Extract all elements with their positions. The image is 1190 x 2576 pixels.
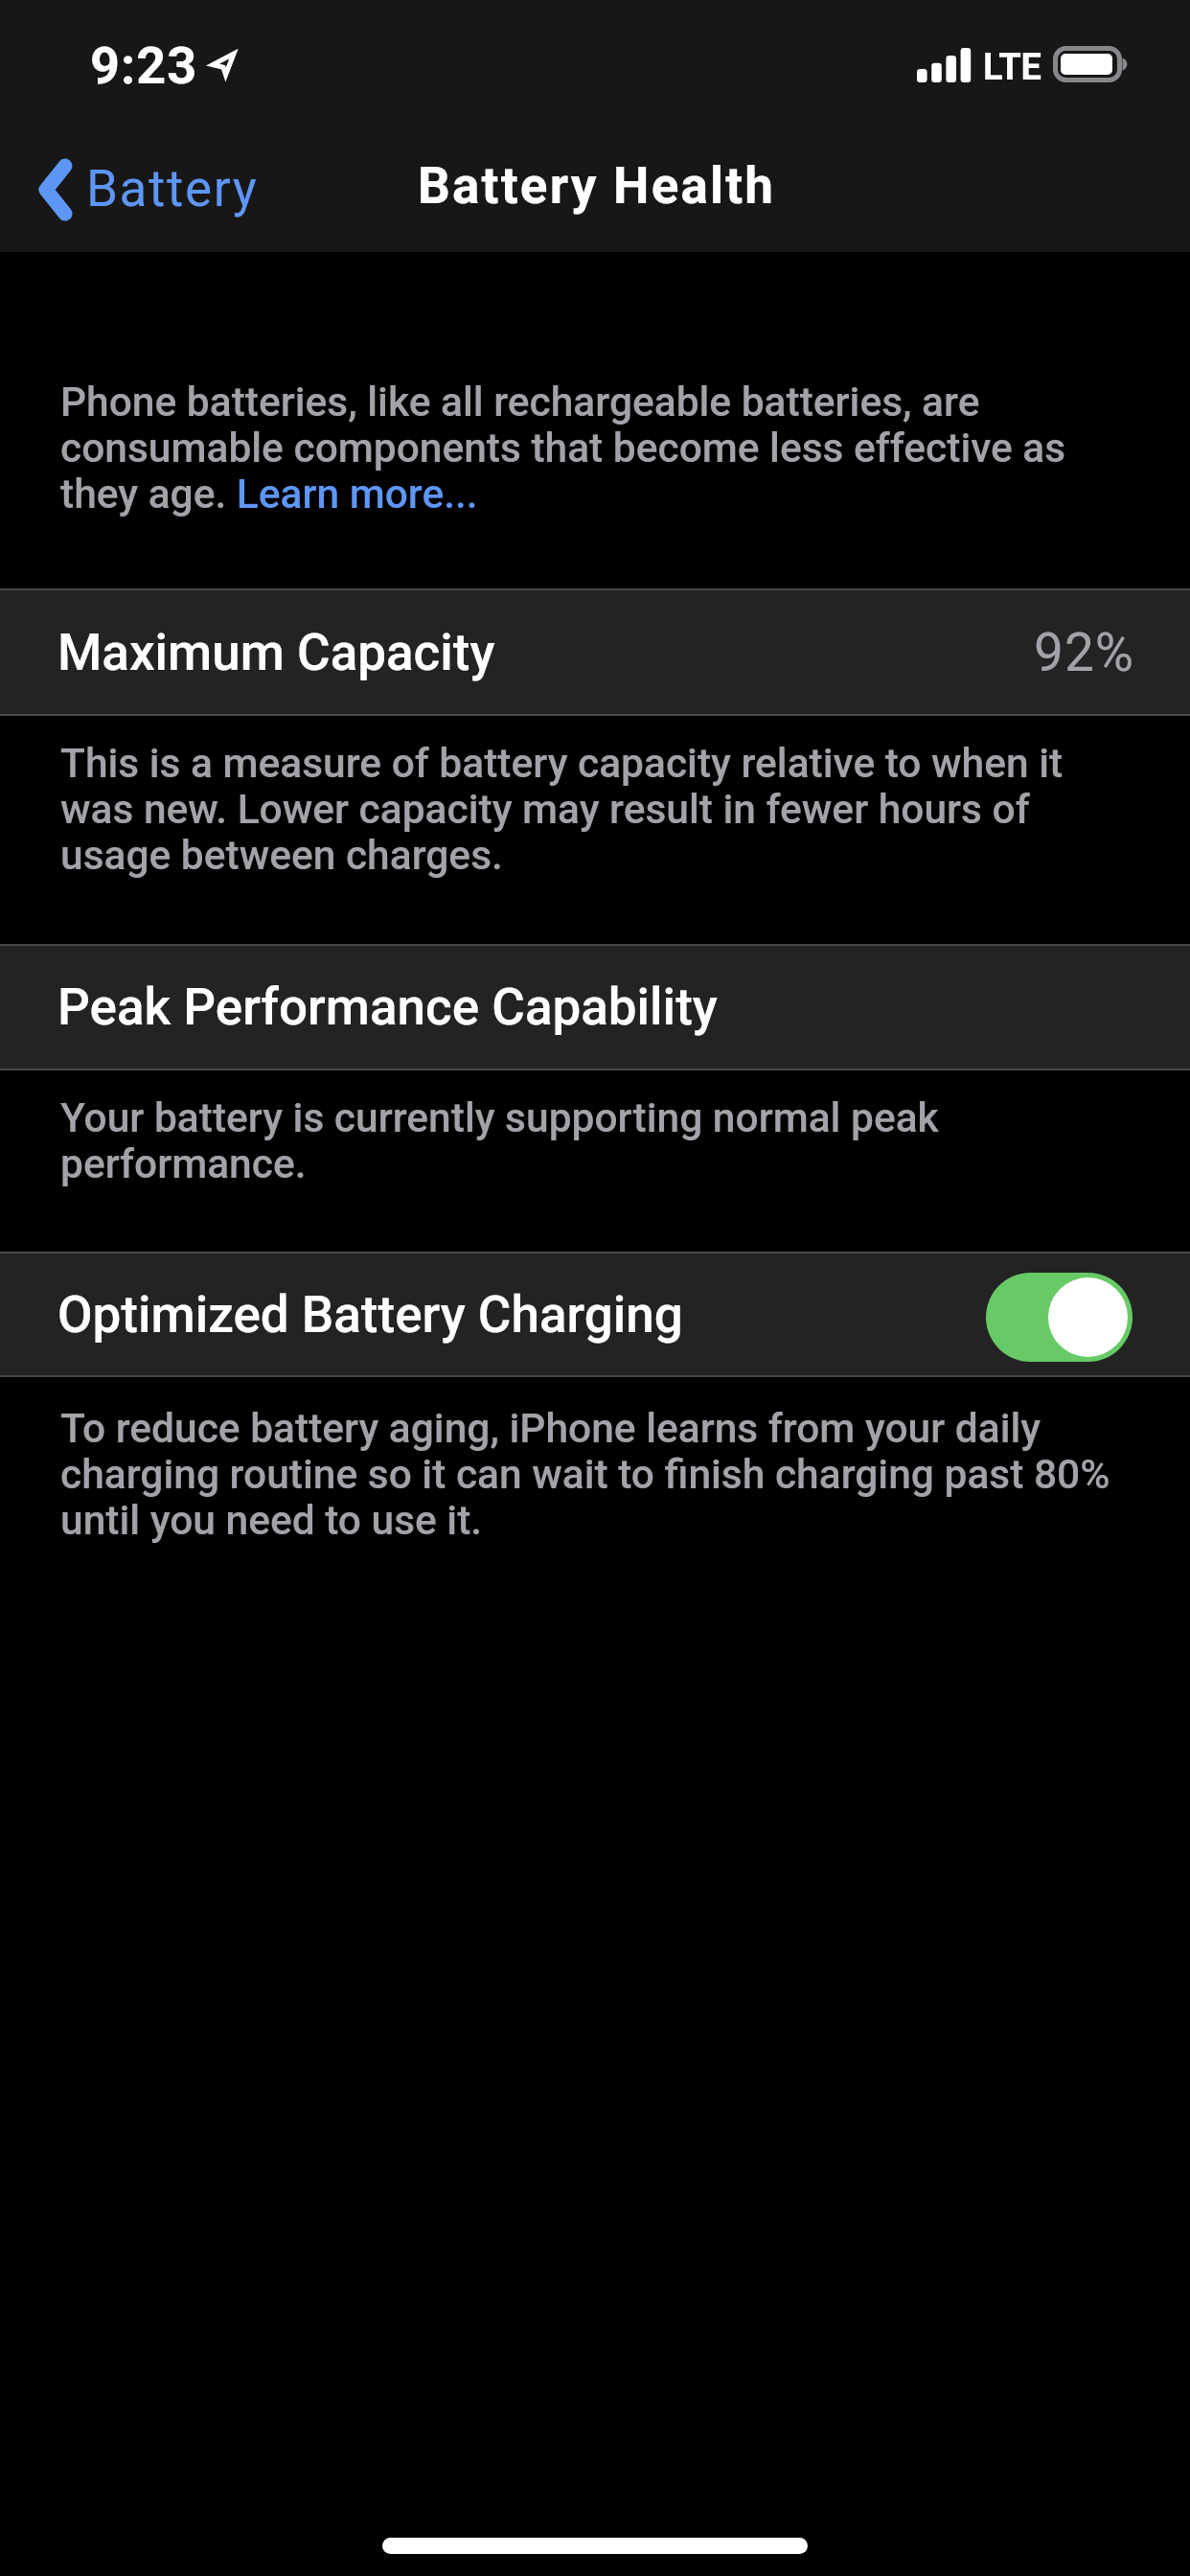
button[interactable]: Back to Battery	[19, 134, 259, 240]
staticText: Your battery is currently supporting nor…	[60, 1094, 1130, 1187]
button[interactable]: Learn more...	[224, 466, 466, 521]
button[interactable]: Peak Performance Capability	[0, 946, 1190, 1069]
staticText: To reduce battery aging, iPhone learns f…	[60, 1405, 1130, 1544]
staticText: Phone batteries, like all rechargeable b…	[60, 379, 1130, 517]
staticText: Battery	[86, 159, 259, 218]
staticText: Maximum Capacity	[57, 623, 495, 682]
staticText: 92%	[1034, 622, 1135, 683]
staticText: This is a measure of battery capacity re…	[60, 740, 1120, 879]
staticText: Battery Health	[418, 156, 776, 216]
staticText: LTE	[983, 46, 1041, 89]
button[interactable]: Maximum Capacity	[0, 590, 1190, 714]
button[interactable]: Optimized Battery Charging	[0, 1253, 1190, 1375]
staticText: 9:23	[90, 35, 198, 96]
staticText: Peak Performance Capability	[57, 977, 718, 1037]
button[interactable]: Optimized Battery Charging toggle	[986, 1273, 1133, 1362]
staticText: Optimized Battery Charging	[57, 1285, 683, 1345]
